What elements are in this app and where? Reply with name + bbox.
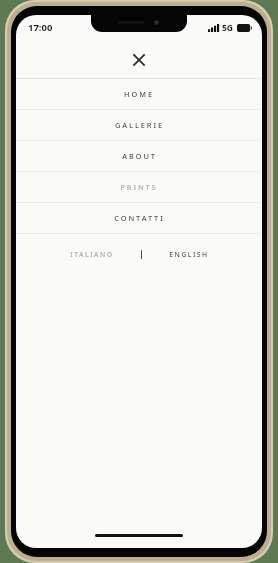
staticText: 17:00: [28, 21, 53, 34]
staticText: ENGLISH: [169, 250, 209, 259]
staticText: HOME: [124, 89, 154, 99]
staticText: ITALIANO: [70, 250, 114, 259]
button[interactable]: HOME: [16, 79, 262, 109]
button[interactable]: PRINTS: [16, 172, 262, 202]
button[interactable]: ENGLISH: [163, 245, 215, 264]
staticText: CONTATTI: [114, 213, 165, 223]
button[interactable]: CONTATTI: [16, 203, 262, 233]
button[interactable]: GALLERIE: [16, 110, 262, 140]
staticText: PRINTS: [120, 182, 158, 192]
button[interactable]: ITALIANO: [64, 245, 120, 264]
staticText: ABOUT: [122, 151, 157, 161]
staticText: 5G: [222, 22, 234, 34]
button[interactable]: ABOUT: [16, 141, 262, 171]
staticText: GALLERIE: [115, 120, 164, 130]
button[interactable]: Close menu: [124, 45, 154, 75]
